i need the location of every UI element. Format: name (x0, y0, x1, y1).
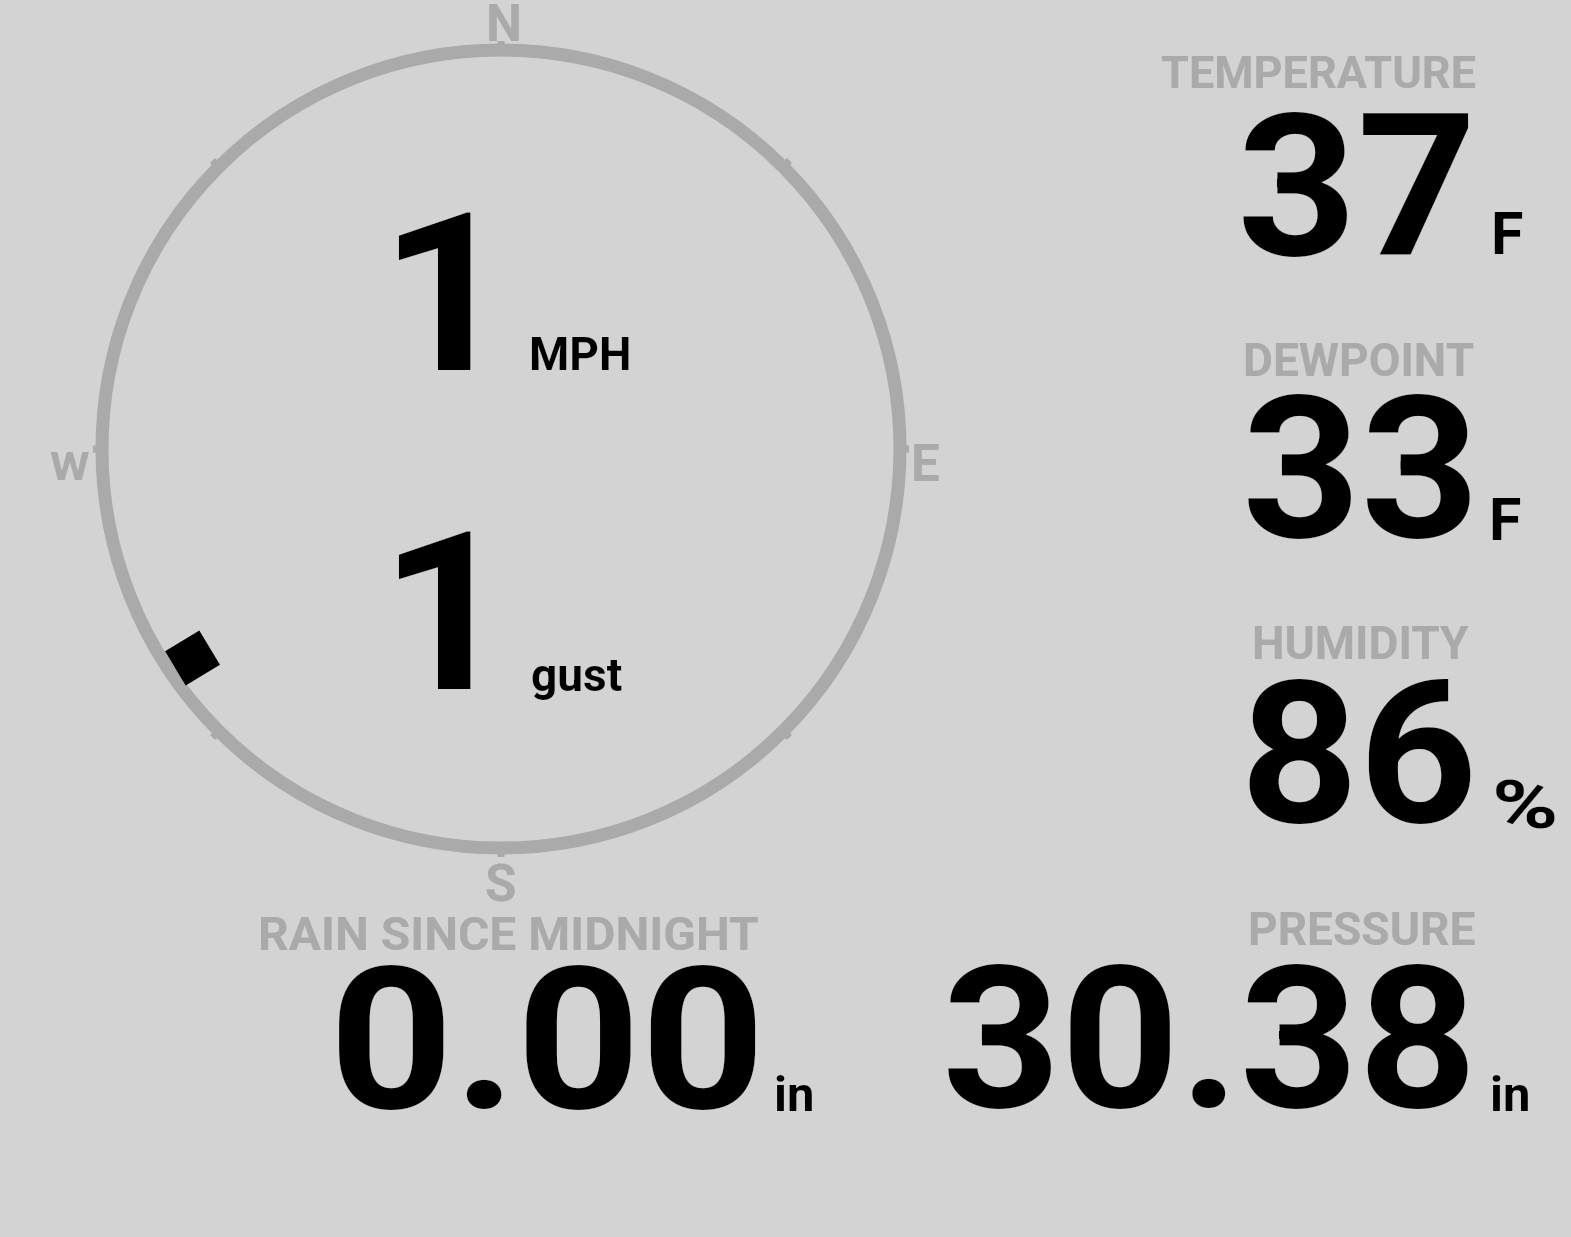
button[interactable]: Temperature 37 degrees Fahrenheit (1150, 40, 1571, 270)
staticText: 30.38 (942, 922, 1478, 1155)
button[interactable]: Wind speed 1 miles per hour, gusting 1, … (100, 48, 902, 850)
staticText: 1 (380, 166, 513, 424)
staticText: 33 (1242, 352, 1480, 585)
staticText: in (774, 1066, 815, 1123)
button[interactable]: Rain since midnight 0.00 inches (250, 894, 830, 1124)
staticText: 1 (380, 485, 513, 743)
staticText: 37 (1237, 70, 1477, 303)
staticText: MPH (529, 327, 632, 381)
staticText: E (911, 434, 940, 494)
button[interactable]: Pressure 30.38 inches (940, 894, 1571, 1124)
staticText: F (1491, 199, 1524, 268)
button[interactable]: Dewpoint 33 degrees Fahrenheit (1150, 325, 1571, 555)
staticText: F (1489, 485, 1522, 554)
staticText: 86 (1240, 637, 1478, 870)
staticText: RAIN SINCE MIDNIGHT (258, 907, 759, 961)
staticText: W (50, 444, 91, 490)
staticText: N (486, 0, 522, 54)
staticText: TEMPERATURE (1161, 46, 1476, 99)
staticText: PRESSURE (1248, 902, 1476, 956)
staticText: % (1492, 767, 1559, 844)
staticText: in (1490, 1066, 1531, 1123)
staticText: gust (531, 648, 623, 702)
staticText: DEWPOINT (1243, 333, 1475, 387)
staticText: S (485, 854, 517, 914)
staticText: 0.00 (329, 923, 766, 1156)
button[interactable]: Humidity 86 percent (1150, 608, 1571, 838)
staticText: HUMIDITY (1252, 616, 1469, 670)
